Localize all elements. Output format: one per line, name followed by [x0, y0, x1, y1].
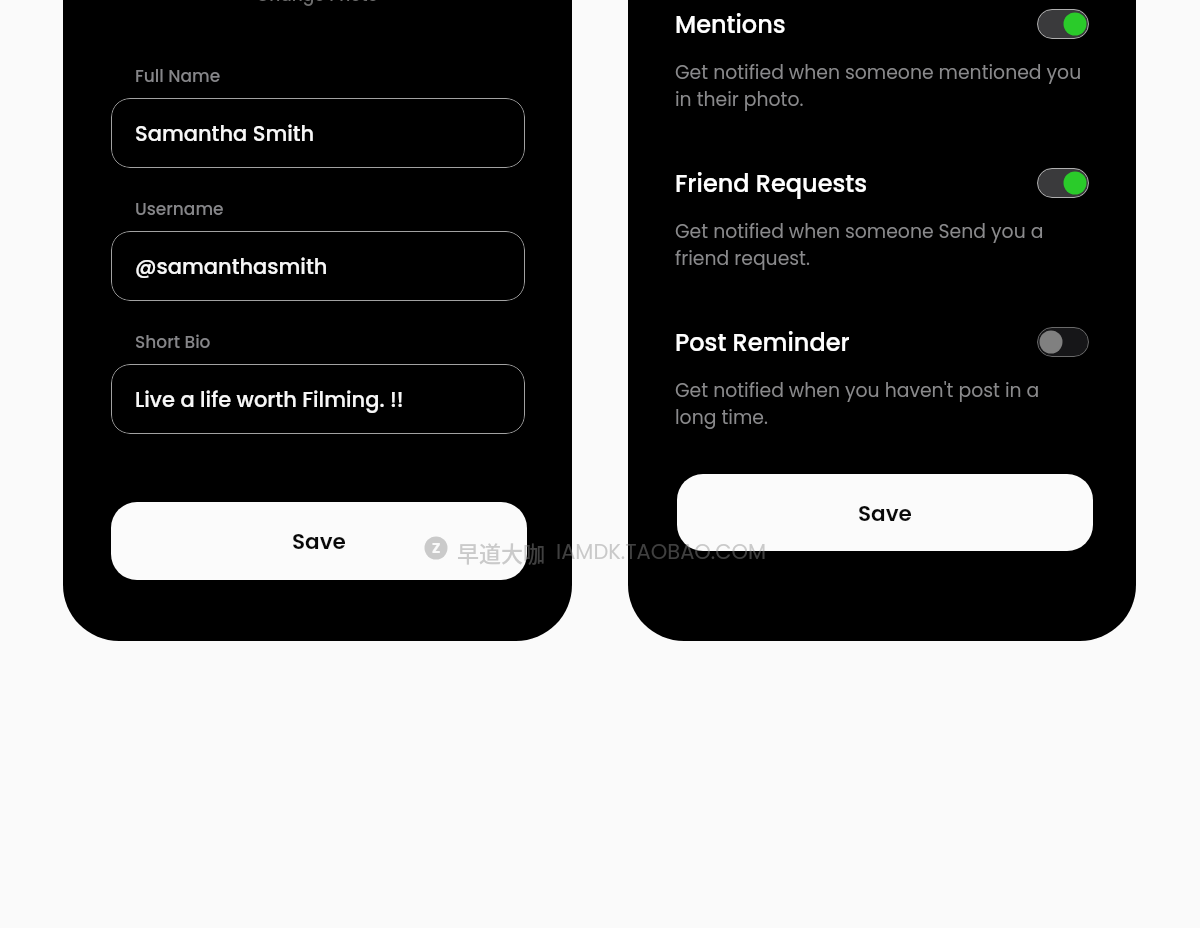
- staticText: Z: [432, 538, 441, 558]
- staticText: Username: [135, 197, 224, 221]
- staticText: Post Reminder: [675, 326, 850, 360]
- staticText: Samantha Smith: [135, 119, 315, 148]
- button[interactable]: Turn on Post Reminder: [1037, 327, 1089, 357]
- button[interactable]: @samanthasmith: [111, 231, 525, 301]
- staticText: Friend Requests: [675, 167, 867, 201]
- staticText: 早道大咖: [457, 536, 546, 568]
- staticText: @samanthasmith: [135, 252, 328, 281]
- staticText: Get notified when someone mentioned you …: [675, 59, 1084, 113]
- staticText: Get notified when you haven't post in a …: [675, 377, 1084, 431]
- button[interactable]: Samantha Smith: [111, 98, 525, 168]
- staticText: Live a life worth Filming. !!: [135, 385, 404, 414]
- staticText: Save: [858, 498, 912, 528]
- button[interactable]: Save: [677, 474, 1093, 551]
- staticText: Save: [292, 526, 346, 556]
- staticText: Mentions: [675, 8, 786, 42]
- button[interactable]: Change Photo: [63, 0, 572, 7]
- button[interactable]: Live a life worth Filming. !!: [111, 364, 525, 434]
- staticText: IAMDK.TAOBAO.COM: [556, 537, 766, 566]
- button[interactable]: Save: [111, 502, 527, 580]
- button[interactable]: Turn off Friend Requests: [1037, 168, 1089, 198]
- staticText: Get notified when someone Send you a fri…: [675, 218, 1084, 272]
- button[interactable]: Turn off Mentions: [1037, 9, 1089, 39]
- staticText: Short Bio: [135, 330, 211, 354]
- staticText: Change Photo: [256, 0, 379, 7]
- staticText: Full Name: [135, 64, 221, 88]
